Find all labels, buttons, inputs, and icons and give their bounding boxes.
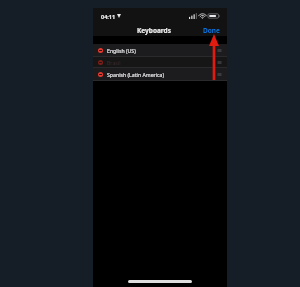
other: Reorder Brasil [217,60,222,65]
button[interactable]: Delete English (US) [93,44,227,56]
staticText: Brasil [107,59,217,66]
button[interactable]: Delete Brasil [93,57,227,67]
staticText: Spanish (Latin America) [107,71,217,78]
staticText: Keyboards [137,26,171,35]
other: Delete English (US) [98,48,103,53]
other: Delete Spanish (Latin America) [98,72,103,77]
staticText: Done [203,26,220,34]
other: Reorder English (US) [217,48,222,53]
other: Reorder Spanish (Latin America) [217,72,222,77]
button[interactable]: Delete Spanish (Latin America) [93,68,227,80]
staticText: English (US) [107,47,217,54]
staticText: 04:11 [101,13,116,20]
other: Delete Brasil [98,60,103,65]
button[interactable]: Done [196,24,227,36]
